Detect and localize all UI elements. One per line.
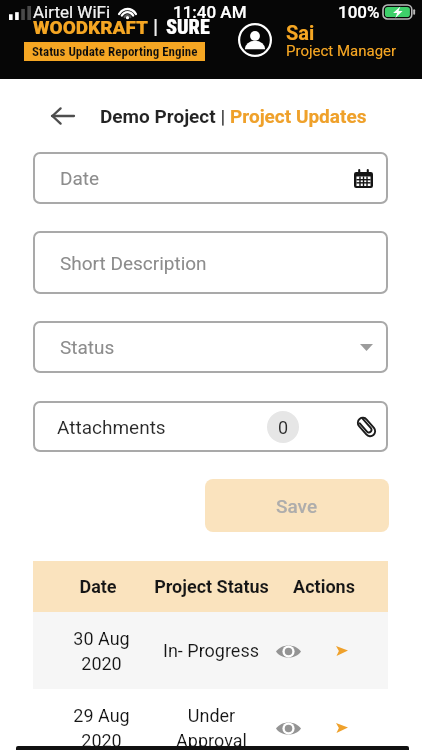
button[interactable]: 30 Aug 2020 xyxy=(33,612,388,689)
button[interactable]: Save xyxy=(205,479,389,532)
staticText: 0 xyxy=(278,417,289,438)
button[interactable]: Date xyxy=(33,152,388,204)
button[interactable]: Send xyxy=(326,712,358,744)
staticText: Under Approval xyxy=(176,705,247,750)
staticText: Demo Project | xyxy=(100,105,230,127)
staticText: Short Description xyxy=(60,252,207,274)
button[interactable]: View xyxy=(272,635,304,667)
staticText: Status xyxy=(60,336,115,358)
staticText: Status Update Reporting Engine xyxy=(32,44,198,59)
staticText: Date xyxy=(79,576,117,597)
staticText: Sai xyxy=(286,21,315,44)
button[interactable]: View xyxy=(272,712,304,744)
staticText: Project Manager xyxy=(286,42,397,60)
staticText: Save xyxy=(276,495,318,517)
staticText: 29 Aug 2020 xyxy=(73,705,130,750)
staticText: Airtel WiFi xyxy=(33,2,111,22)
staticText: WOODKRAFT xyxy=(33,16,149,38)
button[interactable]: Back xyxy=(51,106,75,126)
staticText: | xyxy=(153,15,159,40)
staticText: SURE xyxy=(166,15,210,38)
staticText: Project Status xyxy=(154,576,269,597)
staticText: Attachments xyxy=(57,416,166,438)
staticText: Project Updates xyxy=(230,105,367,127)
button[interactable]: Attachments xyxy=(33,401,388,452)
button[interactable]: Short Description xyxy=(33,231,388,294)
staticText: In- Progress xyxy=(163,640,259,661)
button[interactable]: 29 Aug 2020 xyxy=(33,689,388,750)
staticText: 100% xyxy=(338,2,380,22)
staticText: 30 Aug 2020 xyxy=(73,628,130,674)
button[interactable]: Status xyxy=(33,321,388,373)
staticText: 11:40 AM xyxy=(173,2,247,22)
staticText: Actions xyxy=(293,576,355,597)
staticText: Date xyxy=(60,167,100,189)
button[interactable]: Send xyxy=(326,635,358,667)
